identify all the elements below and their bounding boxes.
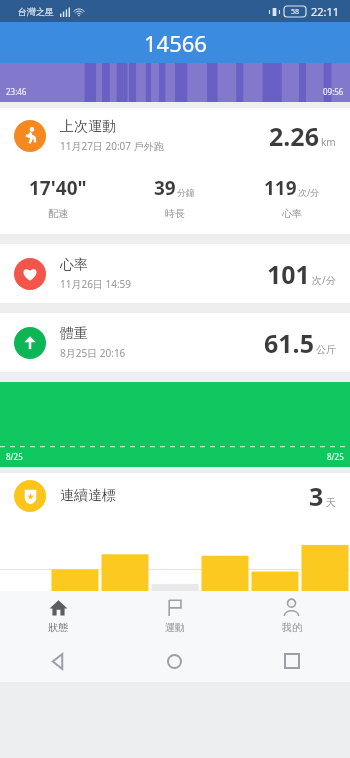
staticText: 運動 — [165, 621, 185, 634]
staticText: 心率 — [282, 207, 302, 220]
staticText: 我的 — [282, 621, 302, 634]
button[interactable]: Streak — [0, 473, 350, 519]
staticText: 上次運動 — [60, 118, 116, 136]
staticText: 次/分 — [312, 273, 336, 287]
staticText: 2.26 — [269, 119, 319, 153]
button[interactable]: Heart rate — [0, 244, 350, 303]
staticText: 台灣之星 — [18, 6, 54, 17]
staticText: 次/分 — [298, 186, 320, 198]
other: Heart rate — [14, 258, 46, 290]
staticText: 39 — [154, 175, 176, 201]
staticText: 分鐘 — [177, 187, 195, 198]
staticText: 體重 — [60, 325, 88, 343]
staticText: 連續達標 — [60, 487, 309, 505]
button[interactable]: Recents — [233, 640, 350, 682]
staticText: 22:11 — [311, 4, 340, 19]
button[interactable]: 狀態 — [0, 591, 116, 640]
staticText: km — [321, 135, 336, 149]
staticText: 3 — [309, 479, 324, 513]
staticText: 心率 — [60, 256, 88, 274]
button[interactable]: 運動 — [116, 591, 233, 640]
staticText: 11月27日 20:07 戶外跑 — [60, 139, 164, 153]
staticText: 8月25日 20:16 — [60, 346, 126, 360]
staticText: 23:46 — [6, 86, 27, 97]
other: Weight — [14, 327, 46, 359]
staticText: 61.5 — [264, 326, 314, 360]
staticText: 11月26日 14:59 — [60, 277, 132, 291]
staticText: 時長 — [165, 207, 185, 220]
staticText: 09:56 — [323, 86, 344, 97]
button[interactable]: Back — [0, 640, 116, 682]
button[interactable]: Home — [116, 640, 233, 682]
staticText: 17'40" — [29, 175, 87, 201]
staticText: 119 — [264, 175, 297, 201]
staticText: 公斤 — [316, 343, 336, 356]
staticText: 8/25 — [327, 451, 344, 462]
staticText: 狀態 — [48, 621, 68, 634]
button[interactable]: Weight — [0, 313, 350, 372]
button[interactable]: 我的 — [233, 591, 350, 640]
staticText: 8/25 — [6, 451, 23, 462]
staticText: 101 — [267, 257, 310, 291]
button[interactable]: 上次運動 — [0, 108, 350, 234]
staticText: 14566 — [144, 28, 207, 58]
other: Streak — [14, 480, 46, 512]
staticText: 天 — [326, 496, 336, 509]
staticText: 58 — [291, 7, 300, 17]
staticText: 配速 — [48, 207, 68, 220]
